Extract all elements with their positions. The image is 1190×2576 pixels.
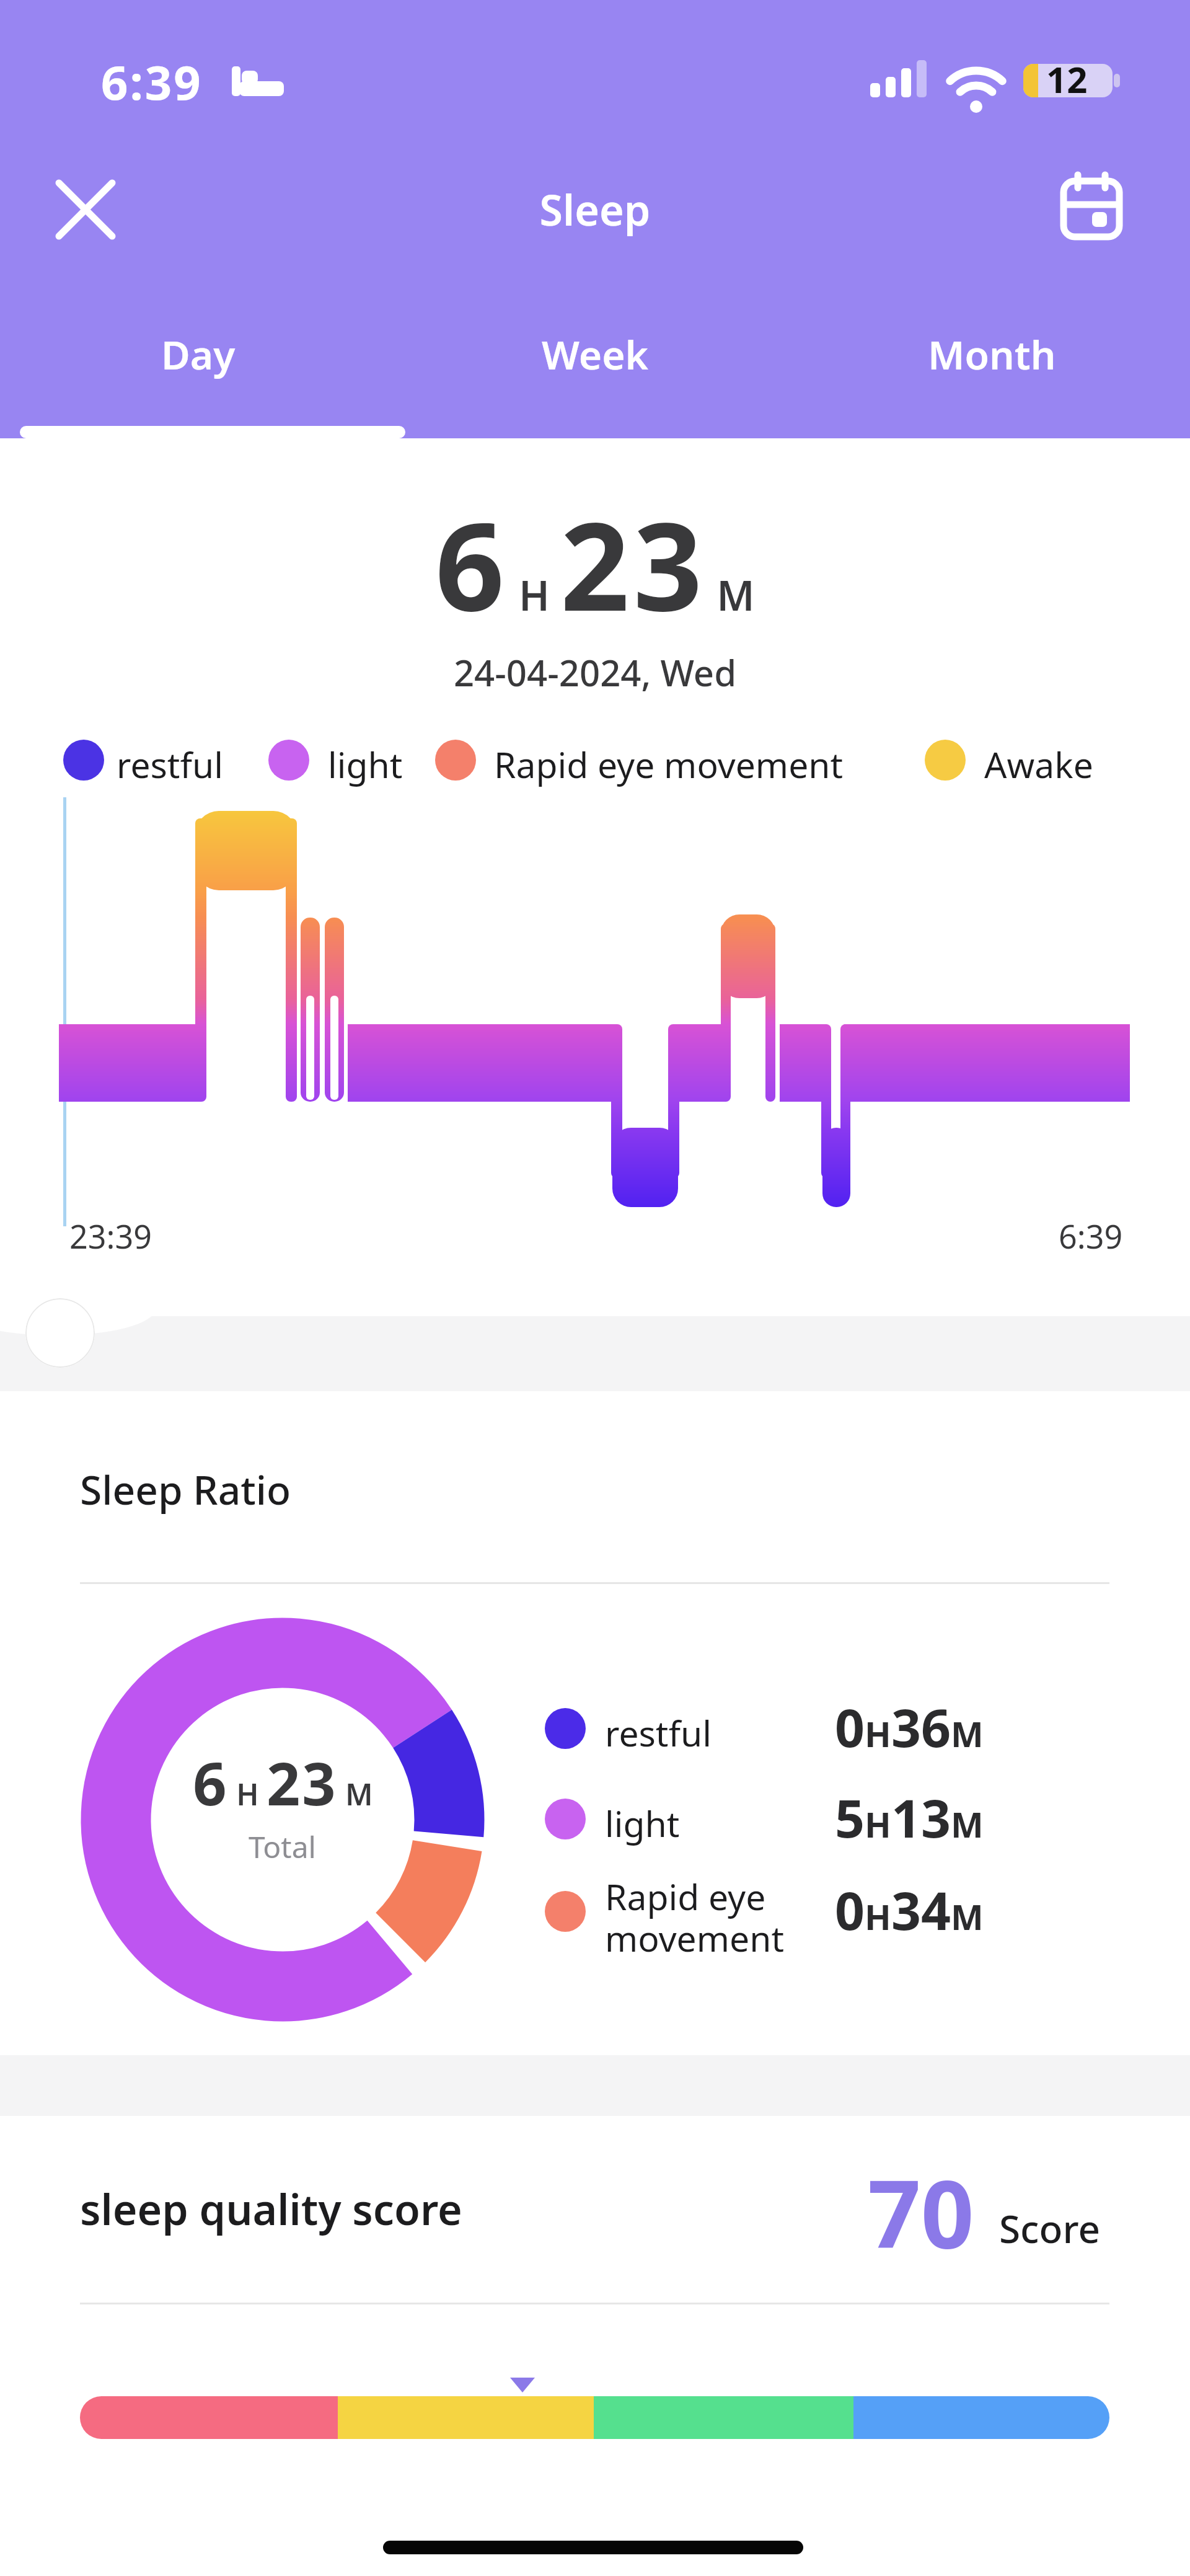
staticText: Rapid eye movement xyxy=(494,740,844,789)
staticText: 6 H 23 M xyxy=(193,1742,373,1822)
staticText: Sleep xyxy=(0,180,1190,238)
staticText: 0H36M xyxy=(835,1691,984,1762)
staticText: 23:39 xyxy=(69,1214,152,1258)
staticText: Month xyxy=(928,327,1056,381)
staticText: 6:39 xyxy=(1059,1214,1123,1258)
button[interactable]: Week xyxy=(397,311,793,397)
button[interactable] xyxy=(1049,164,1129,245)
staticText: 12 xyxy=(1046,55,1088,104)
staticText: Day xyxy=(161,327,236,381)
staticText: Week xyxy=(542,327,649,381)
staticText: Score xyxy=(999,2202,1100,2254)
staticText: 24-04-2024, Wed xyxy=(0,648,1190,697)
button[interactable]: Month xyxy=(793,311,1190,397)
staticText: light xyxy=(328,740,403,789)
staticText: 0H34M xyxy=(835,1874,984,1945)
staticText: movement xyxy=(605,1914,784,1962)
staticText: 5H13M xyxy=(835,1782,984,1852)
staticText: sleep quality score xyxy=(80,2180,462,2237)
staticText: 6:39 xyxy=(101,50,203,114)
staticText: light xyxy=(605,1799,680,1848)
staticText: restful xyxy=(117,740,223,789)
staticText: Sleep Ratio xyxy=(80,1463,291,1516)
button[interactable]: Day xyxy=(0,311,397,397)
button[interactable] xyxy=(25,1298,95,1368)
staticText: 70 xyxy=(868,2149,974,2275)
button[interactable] xyxy=(52,176,120,244)
staticText: 6 H 23 M xyxy=(0,482,1190,647)
staticText: Total xyxy=(249,1826,317,1867)
staticText: restful xyxy=(605,1709,712,1757)
staticText: Awake xyxy=(984,740,1093,789)
staticText: Rapid eye xyxy=(605,1872,766,1921)
